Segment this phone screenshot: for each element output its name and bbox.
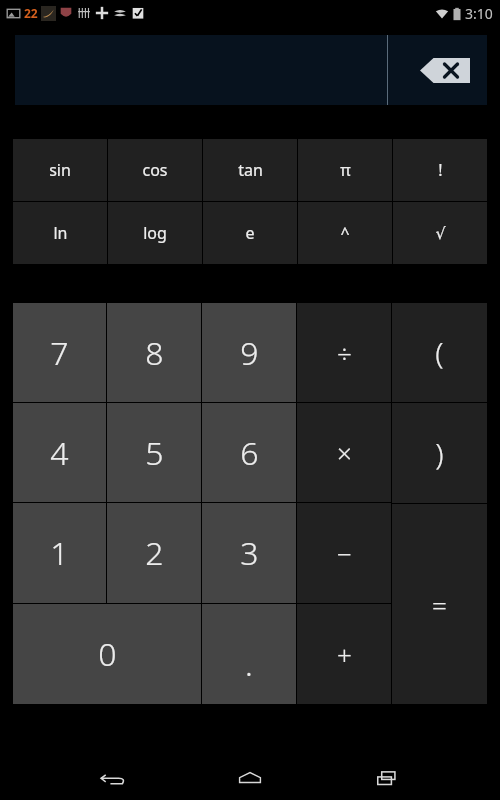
button[interactable]: ^ (298, 202, 392, 264)
button[interactable]: 5 (107, 403, 201, 502)
button[interactable]: sin (13, 139, 107, 201)
staticText: ) (435, 433, 444, 474)
button[interactable]: Backspace (402, 35, 487, 105)
staticText: π (340, 159, 351, 181)
staticText: 2 (145, 531, 164, 575)
button[interactable]: 4 (13, 403, 106, 502)
staticText: ÷ (337, 335, 352, 370)
staticText: sin (49, 159, 71, 181)
button[interactable]: ! (393, 139, 487, 201)
button[interactable]: ln (13, 202, 107, 264)
staticText: √ (435, 224, 446, 243)
staticText: . (245, 642, 253, 686)
button[interactable]: 9 (202, 303, 296, 402)
staticText: 0 (98, 632, 117, 676)
button[interactable]: √ (393, 202, 487, 264)
staticText: 8 (145, 331, 164, 375)
button[interactable]: Back (89, 756, 137, 800)
button[interactable]: Recents (363, 756, 411, 800)
staticText: ^ (340, 222, 350, 244)
staticText: tan (238, 159, 263, 181)
staticText: 6 (240, 431, 259, 475)
button[interactable]: cos (108, 139, 202, 201)
button[interactable]: × (297, 403, 391, 502)
button[interactable]: . (202, 604, 296, 704)
staticText: ! (438, 159, 443, 181)
button[interactable]: 6 (202, 403, 296, 502)
button[interactable]: + (297, 604, 391, 704)
button[interactable]: Home (226, 756, 274, 800)
button[interactable]: ) (392, 403, 487, 503)
staticText: ( (435, 332, 444, 373)
staticText: 3:10 (465, 4, 493, 23)
button[interactable]: ÷ (297, 303, 391, 402)
staticText: 4 (50, 431, 69, 475)
staticText: − (337, 536, 352, 571)
button[interactable]: 7 (13, 303, 106, 402)
staticText: 1 (50, 531, 69, 575)
button[interactable]: = (392, 504, 487, 704)
staticText: + (337, 637, 352, 672)
button[interactable]: 8 (107, 303, 201, 402)
staticText: 5 (145, 431, 164, 475)
button[interactable]: − (297, 503, 391, 603)
staticText: 7 (50, 331, 69, 375)
button[interactable]: 0 (13, 604, 201, 704)
staticText: 9 (240, 331, 259, 375)
staticText: e (245, 222, 255, 244)
staticText: 22 (24, 5, 38, 21)
staticText: ln (53, 222, 68, 244)
button[interactable]: 2 (107, 503, 201, 603)
staticText: log (143, 222, 167, 244)
staticText: cos (142, 159, 168, 181)
button[interactable]: e (203, 202, 297, 264)
button[interactable]: 3 (202, 503, 296, 603)
staticText: × (337, 435, 352, 470)
button[interactable]: π (298, 139, 392, 201)
button[interactable]: tan (203, 139, 297, 201)
staticText: 3 (240, 531, 259, 575)
button[interactable]: ( (392, 303, 487, 402)
button[interactable]: 1 (13, 503, 106, 603)
button[interactable]: log (108, 202, 202, 264)
staticText: = (432, 587, 447, 622)
